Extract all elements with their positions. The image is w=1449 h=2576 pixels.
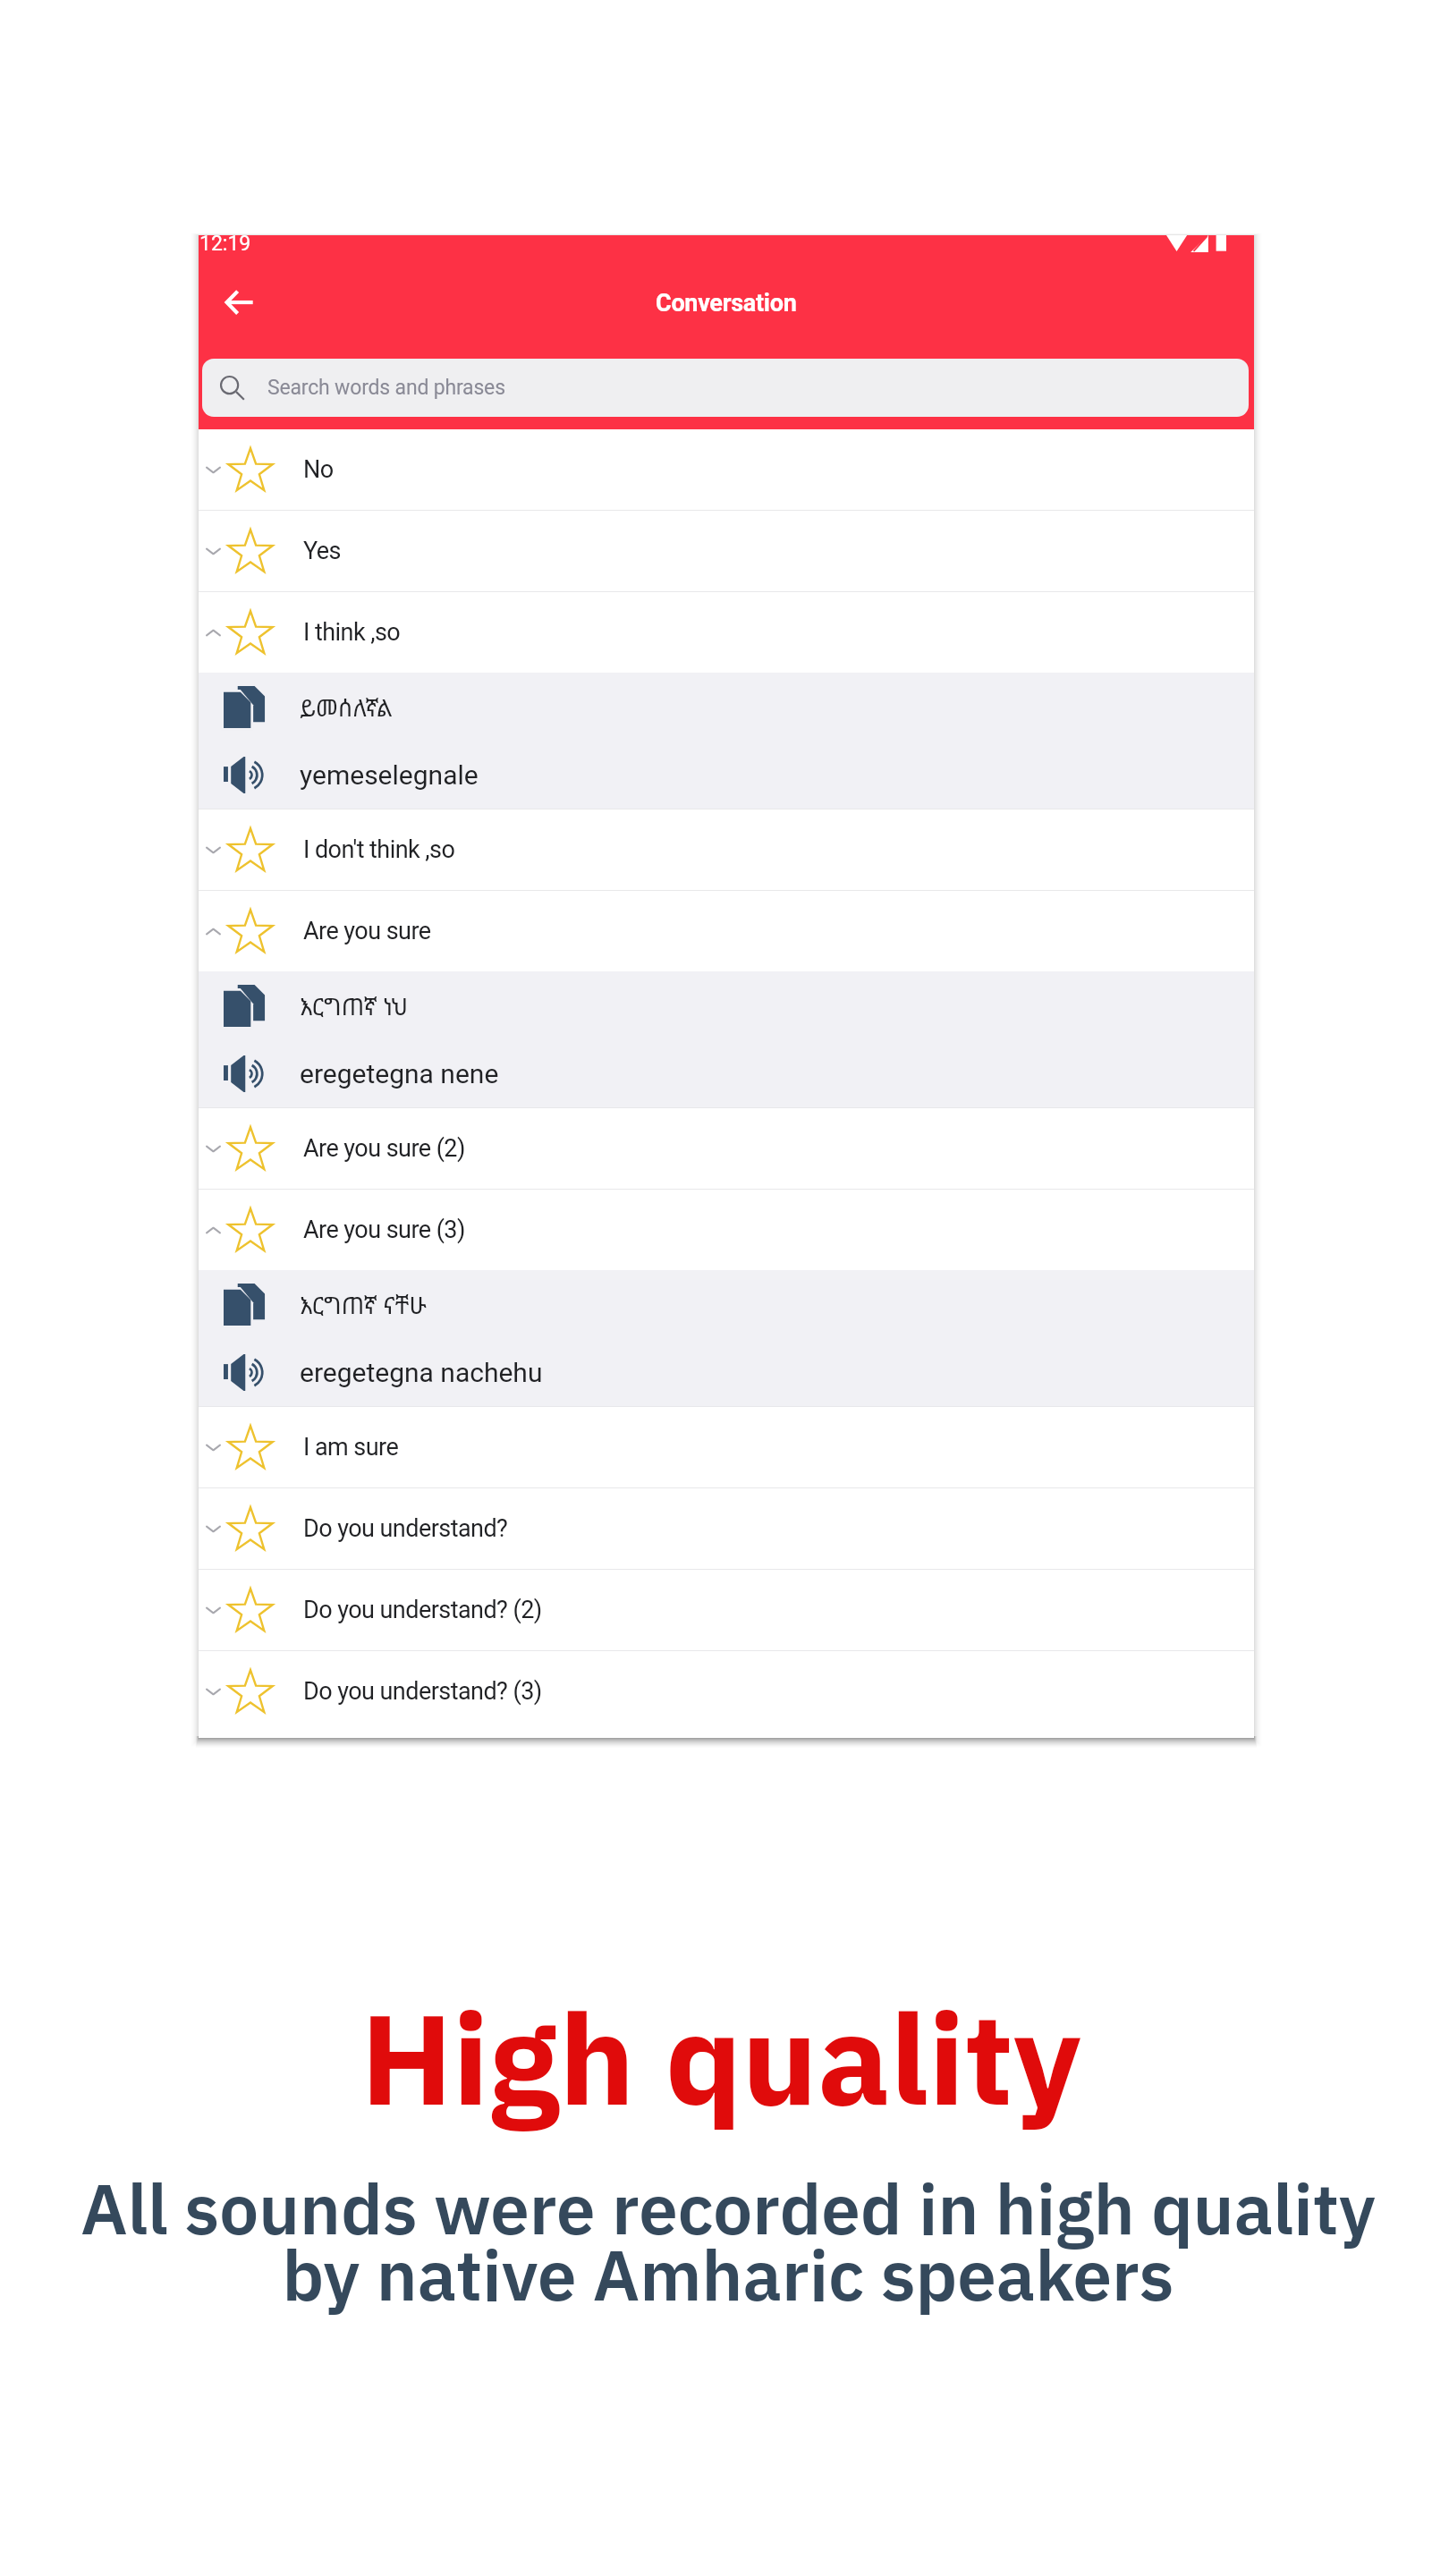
staticText: Do you understand? (3) bbox=[303, 1677, 542, 1706]
button[interactable]: Are you sure (3) bbox=[199, 1190, 1254, 1270]
staticText: እርግጠኛ ነህ bbox=[300, 990, 408, 1021]
button[interactable]: Do you understand? (3) bbox=[199, 1651, 1254, 1732]
other: Copy bbox=[224, 686, 266, 728]
staticText: I don't think ,so bbox=[303, 835, 455, 864]
other: Copy bbox=[224, 1284, 266, 1326]
staticText: ይመሰለኛል bbox=[300, 691, 393, 723]
button[interactable]: Copy bbox=[199, 1270, 1254, 1338]
staticText: Conversation bbox=[656, 289, 797, 318]
button[interactable]: Do you understand? (2) bbox=[199, 1570, 1254, 1650]
button[interactable]: I am sure bbox=[199, 1407, 1254, 1487]
staticText: Do you understand? bbox=[303, 1514, 508, 1543]
staticText: I am sure bbox=[303, 1433, 399, 1462]
other: Play sound bbox=[224, 1352, 266, 1394]
other: Play sound bbox=[224, 754, 266, 796]
other: Copy bbox=[224, 985, 266, 1027]
staticText: 12:19 bbox=[199, 232, 251, 256]
staticText: All sounds were recorded in high quality… bbox=[80, 2158, 1376, 2330]
button[interactable]: Play sound bbox=[199, 741, 1254, 809]
other: Play sound bbox=[224, 1053, 266, 1095]
button[interactable]: Copy bbox=[199, 971, 1254, 1039]
staticText: Do you understand? (2) bbox=[303, 1596, 542, 1624]
button[interactable]: Are you sure bbox=[199, 891, 1254, 971]
staticText: Are you sure (3) bbox=[303, 1216, 465, 1244]
staticText: High quality bbox=[360, 1967, 1081, 2157]
button[interactable]: Yes bbox=[199, 511, 1254, 591]
button[interactable]: I don't think ,so bbox=[199, 809, 1254, 890]
staticText: eregetegna nene bbox=[300, 1058, 499, 1089]
button[interactable]: Play sound bbox=[199, 1338, 1254, 1406]
staticText: No bbox=[303, 455, 334, 484]
staticText: እርግጠኛ ናቸሁ bbox=[300, 1289, 427, 1320]
button[interactable]: Search words and phrases bbox=[202, 359, 1249, 417]
button[interactable]: Copy bbox=[199, 673, 1254, 741]
button[interactable]: I think ,so bbox=[199, 592, 1254, 673]
staticText: Search words and phrases bbox=[267, 376, 505, 400]
button[interactable]: Back bbox=[199, 262, 279, 342]
button[interactable]: Do you understand? bbox=[199, 1488, 1254, 1569]
button[interactable]: Are you sure (2) bbox=[199, 1108, 1254, 1189]
staticText: Are you sure (2) bbox=[303, 1134, 465, 1163]
staticText: eregetegna nachehu bbox=[300, 1357, 543, 1388]
staticText: yemeselegnale bbox=[300, 759, 479, 791]
button[interactable]: No bbox=[199, 429, 1254, 510]
staticText: I think ,so bbox=[303, 618, 401, 647]
button[interactable]: Play sound bbox=[199, 1039, 1254, 1107]
staticText: Yes bbox=[303, 537, 341, 565]
staticText: Are you sure bbox=[303, 917, 431, 945]
